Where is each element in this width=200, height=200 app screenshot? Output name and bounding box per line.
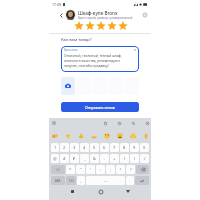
staticText: . <box>129 178 131 183</box>
button[interactable]: 5 <box>90 143 99 152</box>
staticText: 2 <box>63 145 66 150</box>
button[interactable]: 3 <box>70 143 79 152</box>
button[interactable]: Clipboard <box>102 120 108 126</box>
button[interactable]: & <box>90 154 99 163</box>
button[interactable]: Back <box>57 11 65 19</box>
button[interactable]: ₽ <box>70 154 79 163</box>
staticText: ( <box>124 156 126 161</box>
staticText: _ <box>84 156 86 161</box>
button[interactable]: ( <box>120 154 129 163</box>
staticText: / <box>144 156 146 161</box>
button[interactable]: Clear <box>133 48 137 52</box>
staticText: ! <box>120 167 122 172</box>
button[interactable]: Rate star <box>73 21 84 31</box>
staticText: Как вам товар? <box>61 37 92 43</box>
button[interactable]: Home <box>96 187 105 196</box>
button[interactable]: Recents <box>68 187 77 196</box>
button[interactable]: - <box>100 154 109 163</box>
staticText: Отправить отзыв <box>85 105 115 110</box>
staticText: - <box>104 156 106 161</box>
button[interactable]: , <box>77 176 85 185</box>
button[interactable]: ) <box>130 154 139 163</box>
button[interactable]: 1 <box>51 143 59 152</box>
button[interactable]: Emoji <box>90 132 97 139</box>
button[interactable]: Search <box>130 120 136 126</box>
staticText: ? <box>130 167 132 172</box>
button[interactable]: Stickers <box>116 120 122 126</box>
staticText: 8 <box>123 145 126 150</box>
button[interactable]: Enter <box>135 176 149 185</box>
button[interactable]: Settings <box>144 120 150 126</box>
button[interactable]: 123 <box>66 176 76 185</box>
staticText: 3 <box>73 145 76 150</box>
button[interactable]: Keyboard settings <box>51 120 57 126</box>
staticText: Шкаф-купе Bronx <box>78 10 118 16</box>
staticText: · Ru · <box>103 179 109 182</box>
staticText: Цвет: серый, размер: универсальный <box>78 16 133 20</box>
button[interactable]: @ <box>51 154 59 163</box>
staticText: ) <box>134 156 136 161</box>
button[interactable]: Emoji <box>142 132 149 139</box>
button[interactable]: Add photo <box>61 77 75 95</box>
button[interactable]: * <box>66 165 75 174</box>
button[interactable]: / <box>140 154 149 163</box>
button[interactable]: Space <box>86 176 125 185</box>
button[interactable]: ; <box>106 165 115 174</box>
button[interactable]: . <box>126 176 134 185</box>
staticText: 5 <box>93 145 96 150</box>
button[interactable]: " <box>76 165 85 174</box>
staticText: # <box>63 156 66 161</box>
button[interactable]: Отправить отзыв <box>61 102 139 112</box>
button[interactable]: _ <box>80 154 89 163</box>
staticText: 123 <box>69 179 74 183</box>
button[interactable]: Rate star <box>95 21 106 31</box>
button[interactable]: Emoji <box>51 132 58 139</box>
button[interactable]: Rate star <box>84 21 95 31</box>
button[interactable]: # <box>60 154 69 163</box>
button[interactable]: Backspace <box>136 165 149 174</box>
button[interactable]: Ваш отзыв <box>61 46 139 72</box>
button[interactable]: ? <box>126 165 135 174</box>
button[interactable]: Rate star <box>117 21 128 31</box>
button[interactable]: ' <box>86 165 95 174</box>
button[interactable]: 7 <box>110 143 119 152</box>
button[interactable]: 0 <box>140 143 149 152</box>
button[interactable]: 8 <box>120 143 129 152</box>
staticText: ₽ <box>73 156 76 161</box>
staticText: АБВ <box>55 179 61 183</box>
staticText: 7 <box>113 145 116 150</box>
button[interactable]: Emoji <box>64 132 71 139</box>
button[interactable]: + <box>110 154 119 163</box>
button[interactable]: ! <box>116 165 125 174</box>
button[interactable]: =\< <box>51 165 65 174</box>
button[interactable]: 4 <box>80 143 89 152</box>
button[interactable]: Emoji <box>129 132 136 139</box>
button[interactable]: 2 <box>60 143 69 152</box>
button[interactable]: 6 <box>100 143 109 152</box>
button[interactable]: 9 <box>130 143 139 152</box>
staticText: " <box>80 167 82 172</box>
button[interactable]: Back <box>123 187 132 196</box>
button[interactable]: Emoji <box>116 132 123 139</box>
staticText: 17:08 <box>52 2 62 7</box>
button[interactable]: Emoji <box>103 132 110 139</box>
button[interactable]: АБВ <box>51 176 65 185</box>
staticText: * <box>69 167 72 172</box>
button[interactable]: : <box>96 165 105 174</box>
staticText: , <box>80 178 82 183</box>
staticText: @ <box>53 156 57 161</box>
button[interactable]: Rate star <box>106 21 117 31</box>
staticText: =\< <box>56 168 60 172</box>
staticText: Ваш отзыв <box>64 48 78 52</box>
staticText: ; <box>110 167 112 172</box>
staticText: 1 <box>54 145 57 150</box>
staticText: 9 <box>133 145 136 150</box>
button[interactable]: Emoji <box>77 132 84 139</box>
staticText: Отличный, стильный, тёплый шкаф, отлично… <box>64 53 122 68</box>
button[interactable]: Info <box>141 11 149 19</box>
staticText: & <box>93 156 96 161</box>
